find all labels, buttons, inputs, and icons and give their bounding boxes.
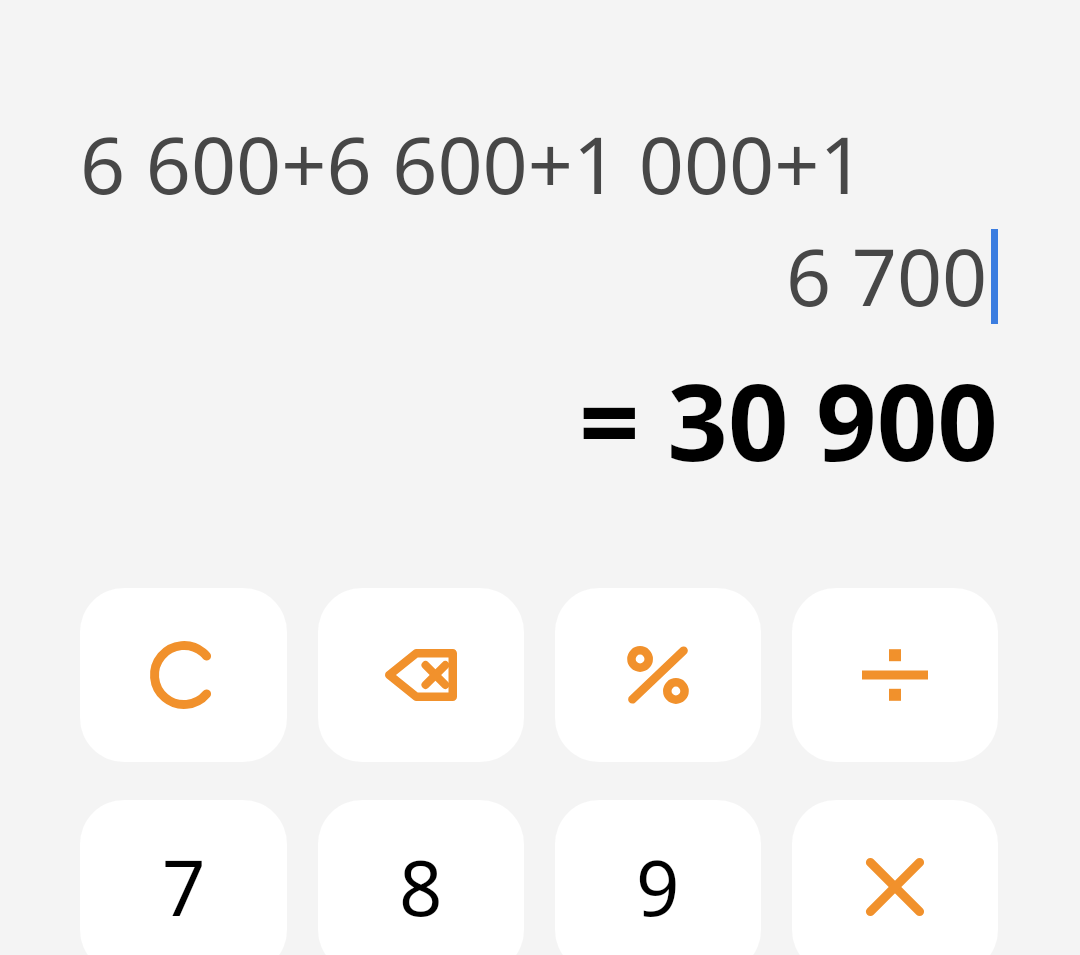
staticText: 9 bbox=[636, 835, 680, 939]
staticText: 8 bbox=[399, 835, 443, 939]
staticText: 6 700 bbox=[786, 222, 988, 330]
button[interactable]: Backspace bbox=[318, 588, 524, 762]
staticText: 6 600+6 600+1 000+1 bbox=[80, 110, 998, 218]
button[interactable]: Multiply bbox=[792, 800, 998, 955]
button[interactable]: Clear bbox=[80, 588, 287, 762]
staticText: 7 bbox=[162, 835, 206, 939]
staticText: = 30 900 bbox=[80, 348, 998, 492]
button[interactable]: 8 bbox=[318, 800, 524, 955]
button[interactable]: 9 bbox=[555, 800, 761, 955]
button[interactable]: Divide bbox=[792, 588, 998, 762]
button[interactable]: Percent bbox=[555, 588, 761, 762]
button[interactable]: 7 bbox=[80, 800, 287, 955]
